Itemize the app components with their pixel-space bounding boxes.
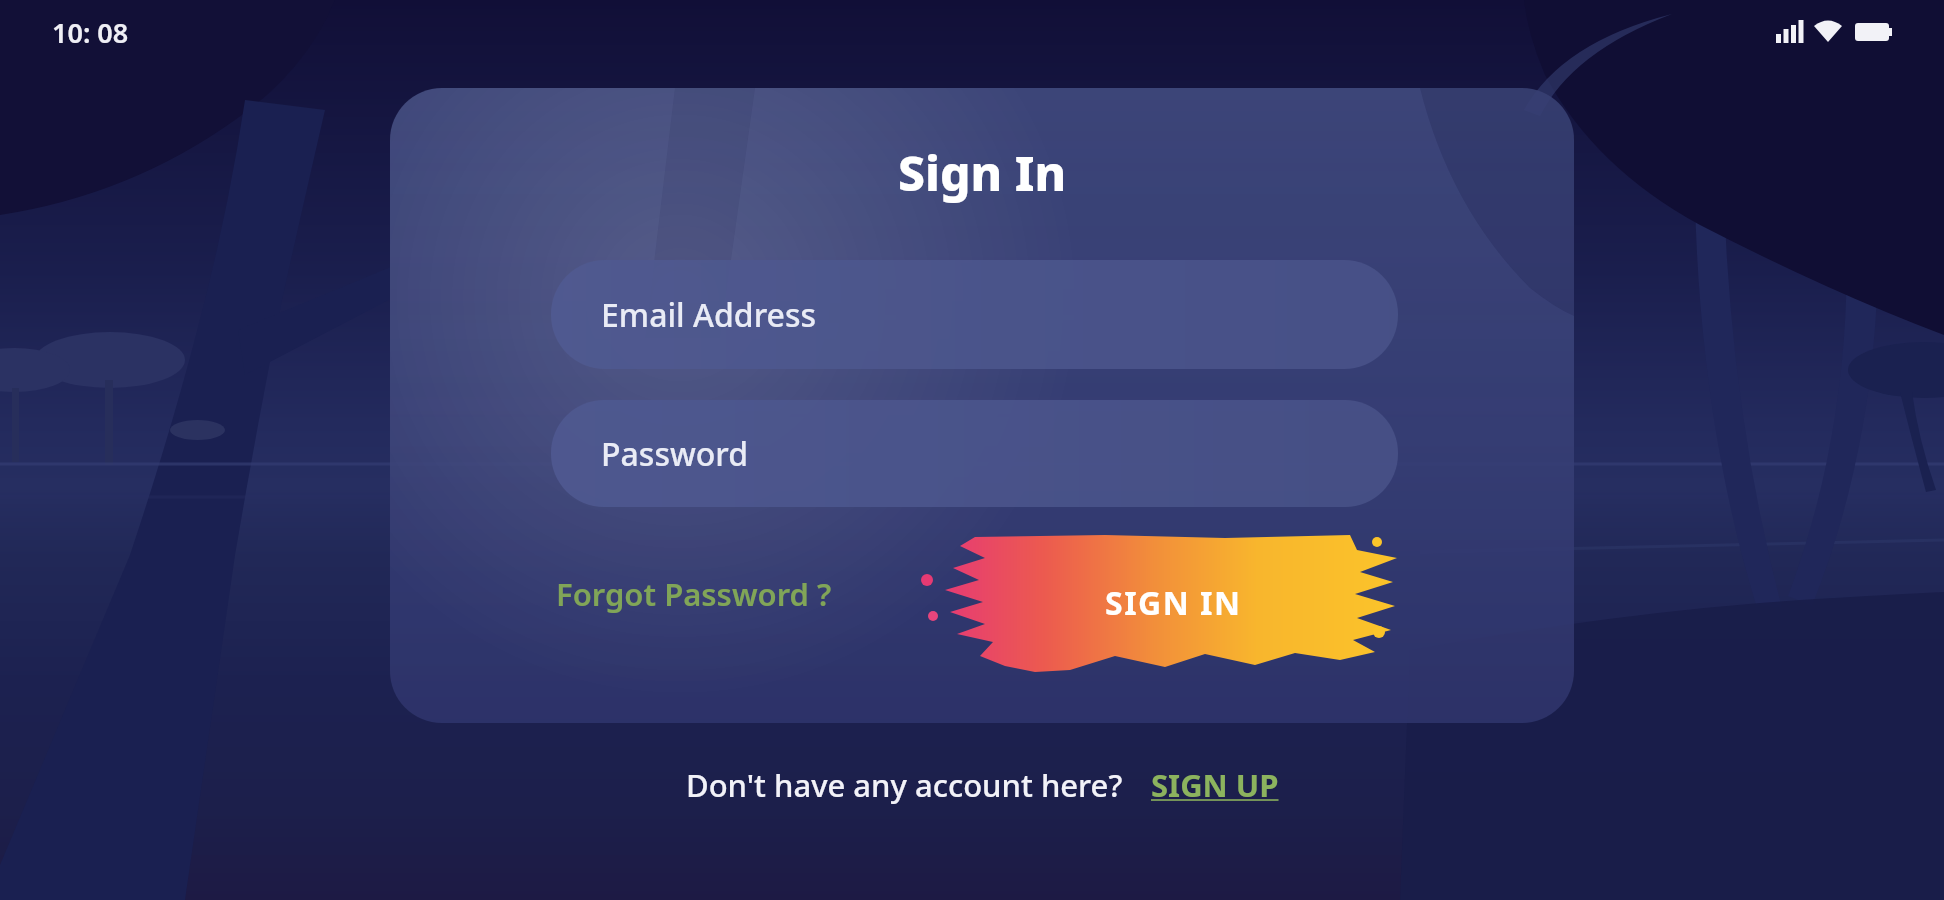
staticText: Password bbox=[601, 432, 749, 476]
staticText: SIGN IN bbox=[1105, 581, 1242, 625]
staticText: Forgot Password ? bbox=[556, 573, 832, 615]
staticText: Don't have any account here? bbox=[686, 764, 1123, 806]
button[interactable]: SIGN UP bbox=[1151, 764, 1279, 806]
button[interactable]: Email Address bbox=[551, 260, 1398, 369]
button[interactable]: Forgot Password ? bbox=[546, 563, 842, 625]
staticText: Email Address bbox=[601, 293, 817, 337]
staticText: 10: 08 bbox=[52, 14, 129, 51]
button[interactable]: SIGN IN bbox=[905, 520, 1425, 685]
staticText: SIGN UP bbox=[1151, 764, 1279, 806]
staticText: Sign In bbox=[898, 140, 1067, 205]
button[interactable]: Password bbox=[551, 400, 1398, 507]
